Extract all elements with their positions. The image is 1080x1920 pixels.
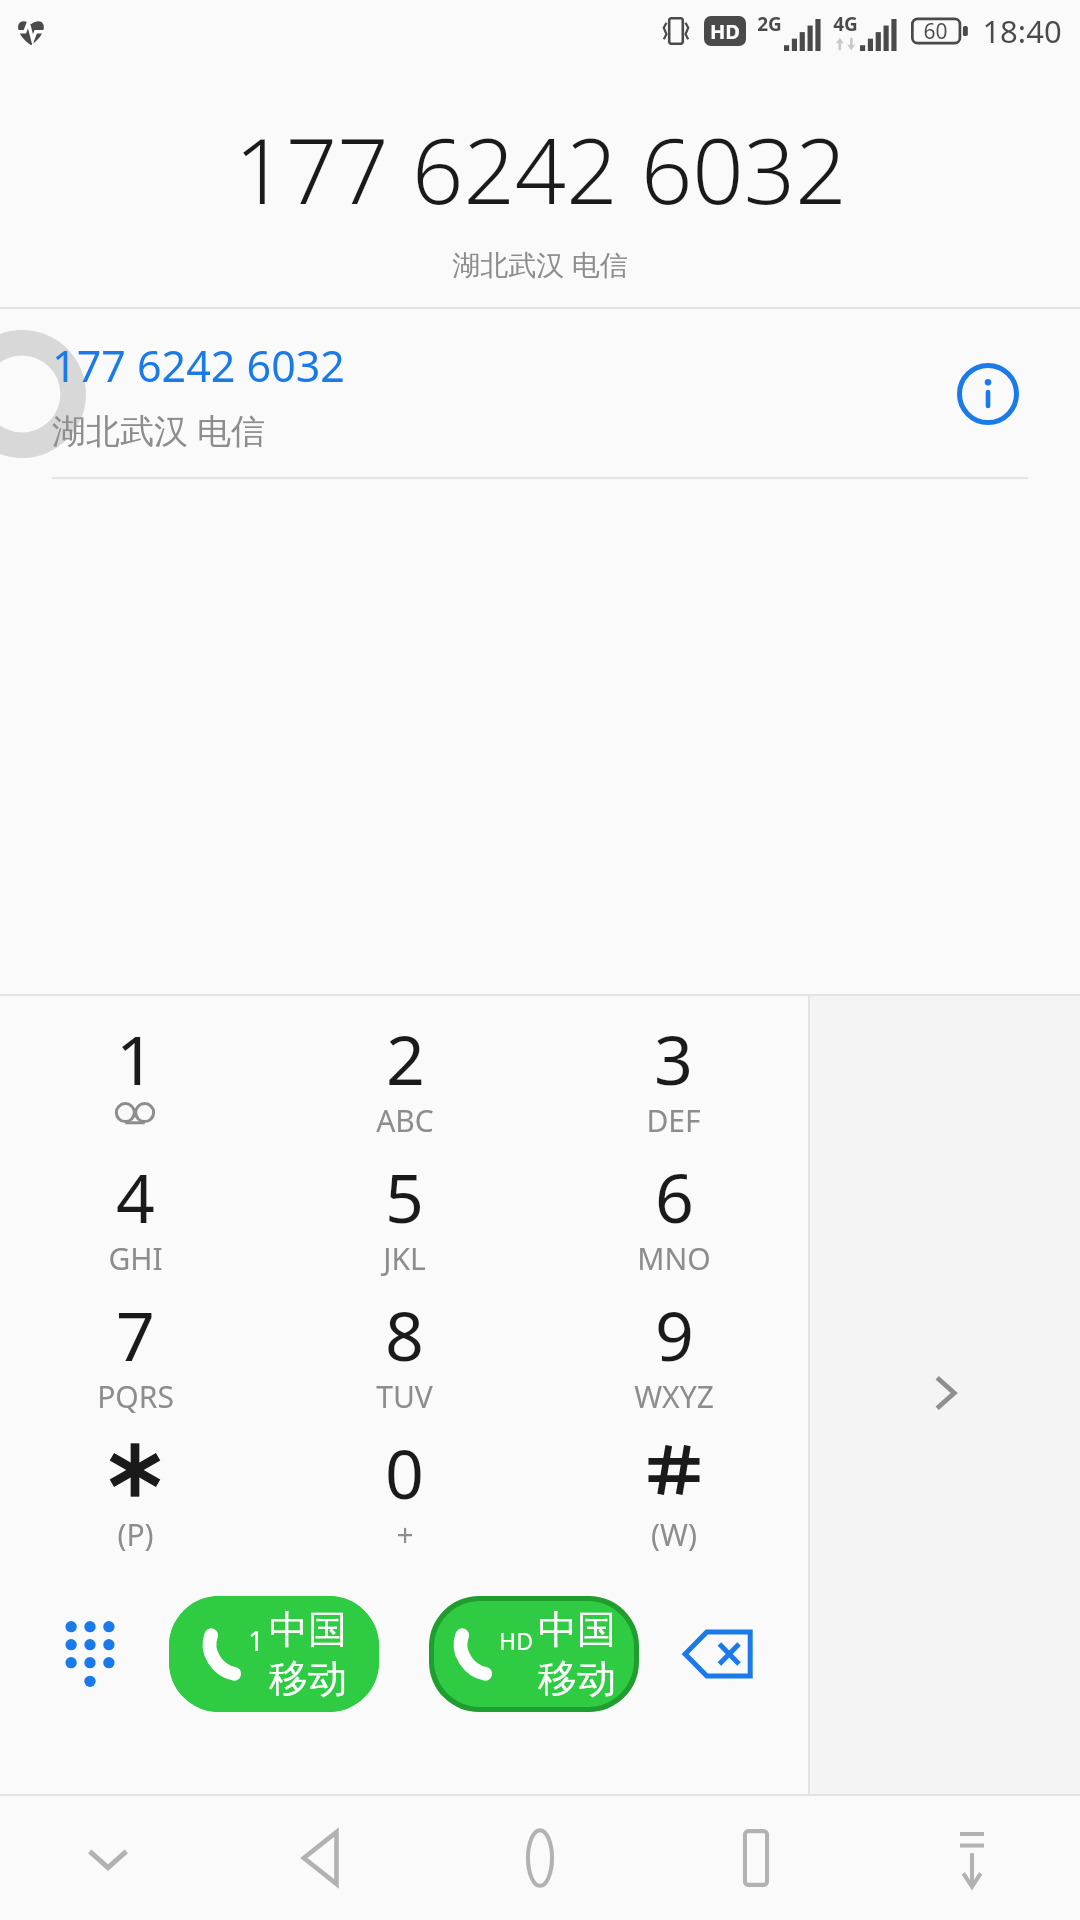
button[interactable]: Back: [216, 1796, 432, 1920]
staticText: PQRS: [97, 1376, 174, 1417]
button[interactable]: 7: [0, 1288, 270, 1426]
button[interactable]: 4: [0, 1150, 270, 1288]
staticText: 移动: [538, 1654, 616, 1703]
button[interactable]: 3: [539, 1012, 808, 1150]
button[interactable]: (W): [539, 1426, 808, 1564]
button[interactable]: 2: [270, 1012, 539, 1150]
staticText: 湖北武汉 电信: [52, 407, 265, 453]
button[interactable]: Contact details: [946, 352, 1030, 436]
button[interactable]: HD: [434, 1601, 634, 1707]
staticText: 5: [385, 1150, 424, 1238]
staticText: JKL: [383, 1238, 426, 1279]
staticText: HD: [710, 18, 740, 45]
staticText: TUV: [376, 1376, 433, 1417]
button[interactable]: 1: [0, 1012, 270, 1150]
staticText: 1: [116, 1012, 155, 1100]
staticText: 中国: [269, 1605, 347, 1654]
staticText: 1: [248, 1622, 264, 1659]
staticText: (P): [117, 1514, 154, 1555]
button[interactable]: 0: [270, 1426, 539, 1564]
button[interactable]: Hide navigation bar: [864, 1796, 1080, 1920]
staticText: 中国: [538, 1605, 616, 1654]
staticText: ABC: [376, 1100, 434, 1141]
staticText: 0: [385, 1426, 424, 1514]
button[interactable]: Home: [432, 1796, 648, 1920]
button[interactable]: Collapse: [0, 1796, 216, 1920]
button[interactable]: Recents: [648, 1796, 864, 1920]
button[interactable]: (P): [0, 1426, 270, 1564]
button[interactable]: 6: [539, 1150, 808, 1288]
button[interactable]: More options: [810, 996, 1080, 1794]
staticText: 177 6242 6032: [234, 108, 847, 231]
staticText: DEF: [646, 1100, 701, 1141]
staticText: 移动: [269, 1654, 347, 1703]
staticText: 177 6242 6032: [52, 336, 345, 395]
staticText: 2: [386, 1012, 425, 1100]
button[interactable]: 8: [270, 1288, 539, 1426]
staticText: (W): [651, 1514, 697, 1555]
staticText: 8: [385, 1288, 424, 1376]
staticText: 7: [116, 1288, 155, 1376]
button[interactable]: 177 6242 6032: [0, 309, 1080, 479]
staticText: WXYZ: [634, 1376, 714, 1417]
staticText: 3: [654, 1012, 693, 1100]
staticText: 2G: [757, 11, 782, 37]
staticText: 9: [655, 1288, 694, 1376]
staticText: MNO: [637, 1238, 711, 1279]
button[interactable]: 1: [169, 1596, 379, 1712]
staticText: 湖北武汉 电信: [452, 245, 628, 283]
button[interactable]: 9: [539, 1288, 808, 1426]
staticText: 60: [923, 17, 948, 46]
staticText: GHI: [108, 1238, 163, 1279]
staticText: HD: [499, 1625, 533, 1656]
button[interactable]: Backspace: [668, 1604, 768, 1704]
staticText: 4: [116, 1150, 155, 1238]
staticText: 4G: [833, 11, 858, 37]
button[interactable]: 5: [270, 1150, 539, 1288]
button[interactable]: Hide dialpad: [40, 1604, 140, 1704]
staticText: +: [396, 1514, 414, 1555]
staticText: 6: [655, 1150, 694, 1238]
staticText: 18:40: [982, 10, 1062, 52]
